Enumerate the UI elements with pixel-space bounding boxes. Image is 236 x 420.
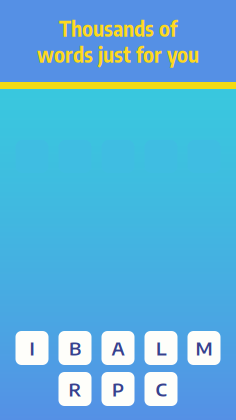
button[interactable]: A	[101, 331, 134, 365]
button[interactable]: B	[58, 331, 91, 365]
staticText: P	[112, 377, 124, 401]
staticText: I	[29, 336, 34, 360]
button[interactable]: L	[144, 331, 177, 365]
button[interactable]: P	[101, 372, 134, 406]
button[interactable]: R	[58, 372, 91, 406]
staticText: A	[111, 336, 124, 360]
staticText: Thousands of	[59, 15, 177, 41]
button[interactable]: I	[15, 331, 48, 365]
staticText: B	[69, 336, 81, 360]
staticText: M	[195, 336, 212, 360]
staticText: R	[68, 377, 81, 401]
staticText: words just for you	[37, 41, 199, 67]
staticText: L	[156, 336, 166, 360]
button[interactable]: C	[144, 372, 177, 406]
button[interactable]: M	[187, 331, 220, 365]
staticText: C	[155, 377, 166, 401]
